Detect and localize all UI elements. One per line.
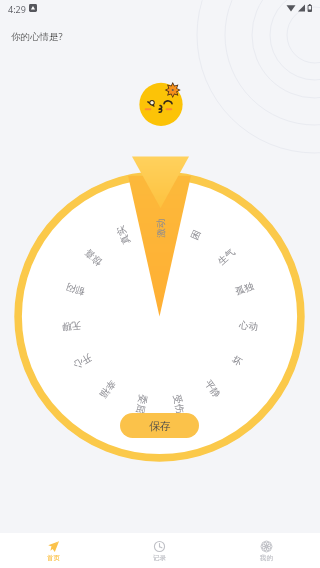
button[interactable]: 保存: [120, 413, 199, 438]
staticText: 你的心情是?: [11, 30, 63, 43]
staticText: 无聊: [61, 319, 82, 333]
staticText: 坏: [230, 353, 244, 369]
staticText: 激动: [154, 218, 166, 237]
staticText: 真实: [114, 224, 133, 246]
staticText: 心动: [238, 319, 259, 333]
staticText: 4:29: [8, 3, 26, 15]
staticText: 惊喜: [82, 246, 104, 268]
staticText: 孤独: [234, 280, 255, 298]
staticText: 生气: [215, 246, 237, 268]
staticText: 郁闷: [65, 280, 86, 298]
staticText: 我的: [260, 554, 273, 562]
staticText: 记录: [153, 554, 166, 562]
staticText: 受伤: [171, 393, 186, 415]
staticText: 平静: [202, 378, 223, 400]
staticText: 开心: [71, 351, 94, 371]
staticText: 委屈: [134, 393, 149, 415]
staticText: 保存: [149, 419, 171, 433]
button[interactable]: 我的: [213, 533, 320, 568]
staticText: 幸福: [97, 378, 118, 400]
staticText: 首页: [47, 554, 60, 562]
staticText: 困: [188, 228, 203, 242]
button[interactable]: 首页: [0, 533, 106, 568]
button[interactable]: 记录: [106, 533, 213, 568]
